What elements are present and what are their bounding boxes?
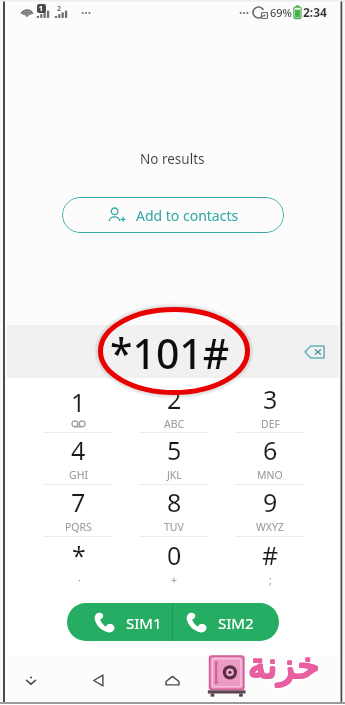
staticText: خزنة — [249, 644, 321, 686]
staticText: خزنة — [251, 644, 323, 686]
staticText: JKL — [167, 468, 182, 482]
button[interactable]: Backspace — [298, 336, 330, 368]
staticText: 7 — [71, 485, 86, 519]
staticText: خزنة — [247, 642, 319, 684]
staticText: خزنة — [250, 646, 322, 688]
staticText: خزنة — [248, 646, 320, 688]
button[interactable]: 8 — [126, 485, 222, 537]
staticText: 2 — [57, 4, 62, 14]
staticText: خزنة — [247, 646, 319, 688]
staticText: خزنة — [249, 645, 321, 687]
staticText: خزنة — [247, 648, 319, 690]
staticText: خزنة — [248, 642, 320, 684]
staticText: 1 — [71, 385, 86, 419]
button[interactable]: 0 — [126, 537, 222, 589]
button[interactable]: Back — [81, 663, 115, 697]
staticText: خزنة — [246, 647, 318, 689]
staticText: خزنة — [249, 644, 321, 686]
staticText: + — [171, 573, 178, 587]
staticText: 3 — [263, 382, 278, 416]
staticText: DEF — [261, 417, 280, 431]
staticText: SIM1 — [126, 613, 162, 633]
staticText: * — [72, 538, 86, 572]
button[interactable]: # — [222, 537, 318, 589]
button[interactable]: 7 — [31, 485, 126, 537]
staticText: خزنة — [249, 646, 321, 688]
staticText: 2:34 — [303, 4, 327, 20]
staticText: ··· — [239, 4, 250, 20]
staticText: خزنة — [251, 645, 323, 687]
staticText: خزنة — [247, 644, 319, 686]
button[interactable]: SIM1 — [67, 603, 172, 641]
staticText: # — [262, 538, 279, 572]
staticText: خزنة — [249, 645, 321, 687]
staticText: 1 — [39, 4, 44, 13]
staticText: خزنة — [246, 643, 318, 685]
staticText: خزنة — [247, 645, 319, 687]
staticText: خزنة — [250, 645, 322, 687]
staticText: خزنة — [245, 644, 317, 686]
button[interactable]: 4 — [31, 433, 126, 485]
staticText: خزنة — [248, 647, 320, 689]
staticText: خزنة — [249, 643, 321, 685]
staticText: خزنة — [249, 648, 321, 690]
staticText: خزنة — [247, 644, 319, 686]
staticText: No results — [140, 150, 205, 168]
staticText: SIM2 — [218, 613, 254, 633]
staticText: خزنة — [251, 646, 323, 688]
staticText: خزنة — [247, 646, 319, 688]
staticText: PQRS — [65, 520, 92, 534]
staticText: خزنة — [249, 642, 321, 684]
staticText: MNO — [257, 468, 283, 482]
staticText: خزنة — [250, 644, 322, 686]
staticText: WXYZ — [256, 520, 284, 534]
button[interactable]: 2 — [126, 382, 222, 433]
staticText: TUV — [164, 520, 184, 534]
staticText: خزنة — [248, 646, 320, 688]
button[interactable]: Add to contacts — [62, 197, 284, 233]
staticText: خزنة — [248, 644, 320, 686]
staticText: 4 — [71, 433, 86, 467]
staticText: خزنة — [246, 646, 318, 688]
staticText: · — [78, 573, 81, 587]
staticText: خزنة — [248, 645, 320, 687]
staticText: خزنة — [249, 647, 321, 689]
staticText: خزنة — [247, 645, 319, 687]
staticText: خزنة — [249, 646, 321, 688]
staticText: خزنة — [248, 648, 320, 690]
staticText: خزنة — [247, 647, 319, 689]
staticText: خزنة — [246, 644, 318, 686]
button[interactable]: Home — [155, 663, 189, 697]
staticText: خزنة — [245, 646, 317, 688]
staticText: 2 — [167, 382, 182, 416]
button[interactable]: 6 — [222, 433, 318, 485]
button[interactable]: * — [31, 537, 126, 589]
staticText: خزنة — [246, 645, 318, 687]
staticText: 5 — [167, 433, 182, 467]
button[interactable]: SIM2 — [173, 603, 279, 641]
staticText: 69% — [270, 5, 292, 20]
staticText: 0 — [167, 538, 182, 572]
staticText: خزنة — [250, 647, 322, 689]
staticText: Add to contacts — [136, 206, 239, 225]
staticText: GHI — [69, 468, 88, 482]
staticText: خزنة — [250, 643, 322, 685]
staticText: 8 — [167, 485, 182, 519]
staticText: 9 — [263, 485, 278, 519]
staticText: ; — [269, 573, 272, 587]
staticText: ··· — [81, 4, 92, 20]
button[interactable]: Hide keyboard — [14, 663, 48, 697]
staticText: خزنة — [248, 643, 320, 685]
staticText: خزنة — [247, 643, 319, 685]
staticText: خزنة — [248, 645, 320, 687]
staticText: خزنة — [248, 644, 320, 686]
button[interactable]: 9 — [222, 485, 318, 537]
staticText: ABC — [164, 417, 185, 431]
button[interactable]: 1 — [31, 382, 126, 433]
button[interactable]: 5 — [126, 433, 222, 485]
button[interactable]: 3 — [222, 382, 318, 433]
staticText: 6 — [263, 433, 278, 467]
staticText: خزنة — [245, 645, 317, 687]
staticText: *101# — [110, 325, 230, 378]
